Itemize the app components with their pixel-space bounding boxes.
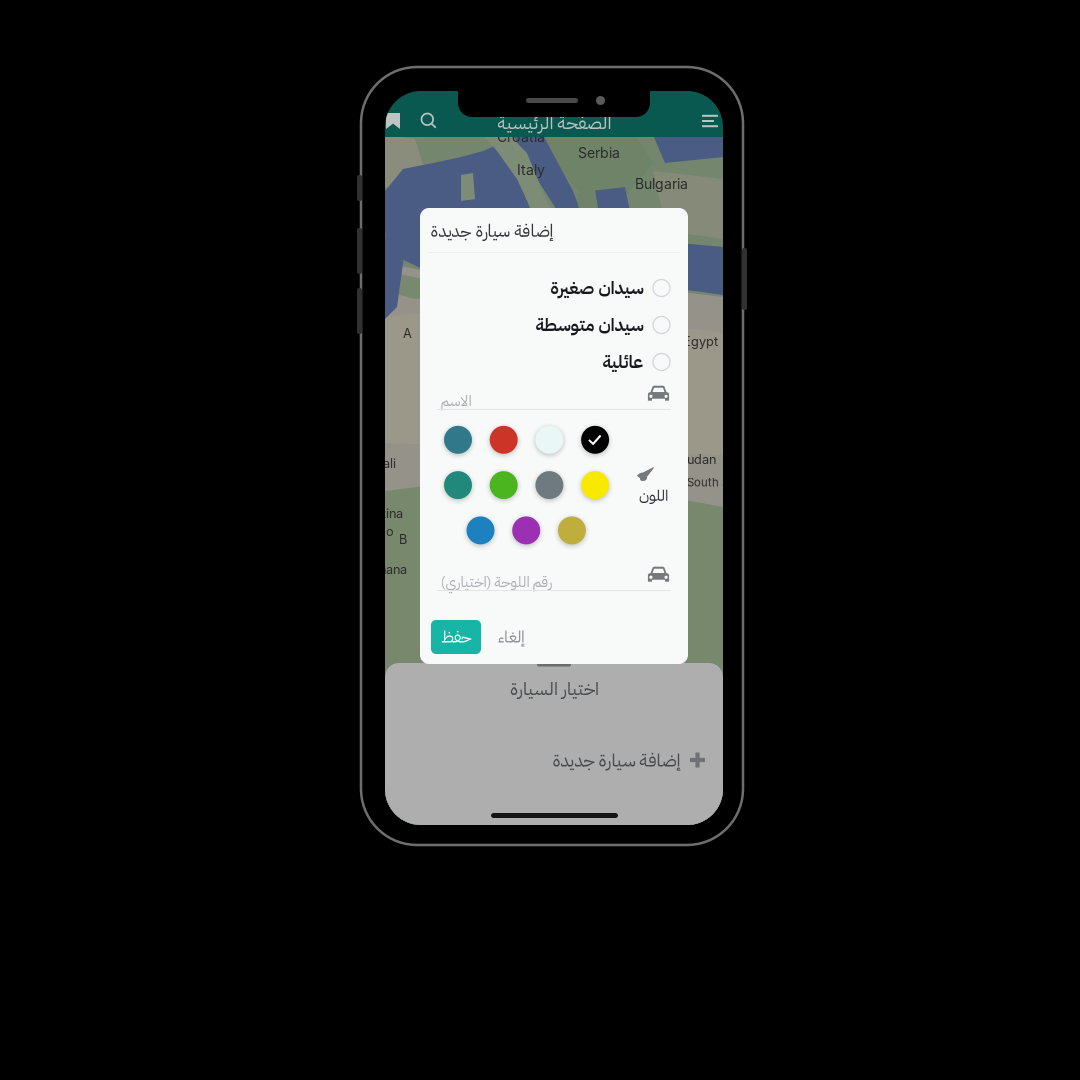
staticText: B [399,532,407,547]
button[interactable]: Choose colour [490,426,518,454]
staticText: ali [383,456,396,471]
staticText: hana [379,562,407,577]
button[interactable]: Choose colour [535,426,563,454]
staticText: Bulgaria [635,175,688,192]
staticText: سيدان صغيرة [550,275,643,301]
staticText: Sudan [679,452,716,467]
staticText: South Su [687,476,736,489]
button[interactable]: Choose colour [535,471,563,499]
button[interactable]: Choose colour [581,426,609,454]
staticText: Croatia [497,128,545,145]
button[interactable]: Choose colour [466,516,494,544]
staticText: إضافة سيارة جديدة [552,747,680,774]
staticText: اختيار السيارة [509,676,598,702]
button[interactable]: سيدان متوسطة [438,310,670,340]
button[interactable]: عائلية [438,347,670,377]
button[interactable]: Choose colour [444,426,472,454]
staticText: A [403,326,412,341]
staticText: kina [379,506,403,521]
staticText: الصفحة الرئيسية [497,109,611,136]
button[interactable]: Search [421,113,436,128]
staticText: الاسم [440,390,471,412]
staticText: Italy [517,161,545,178]
staticText: so [379,524,394,539]
button[interactable]: Choose colour [490,471,518,499]
button[interactable]: Choose colour [512,516,540,544]
staticText: رقم اللوحة (اختياري) [440,571,552,593]
button[interactable]: إضافة سيارة جديدة [385,743,723,777]
button[interactable]: إلغاء [490,620,532,654]
staticText: إلغاء [497,624,524,649]
button[interactable]: سيدان صغيرة [438,273,670,303]
button[interactable]: اللون [626,463,680,507]
button[interactable]: Menu [702,114,718,128]
staticText: حفظ [440,624,471,649]
button[interactable]: Bookmarks [386,113,400,129]
staticText: Egypt [683,334,718,349]
staticText: Serbia [578,144,620,161]
button[interactable]: حفظ [431,620,481,654]
staticText: سيدان متوسطة [535,312,643,338]
button[interactable]: Choose colour [444,471,472,499]
staticText: اللون [638,484,667,507]
button[interactable]: Choose colour [558,516,586,544]
staticText: إضافة سيارة جديدة [430,218,553,244]
staticText: عائلية [602,349,643,375]
button[interactable]: Choose colour [581,471,609,499]
